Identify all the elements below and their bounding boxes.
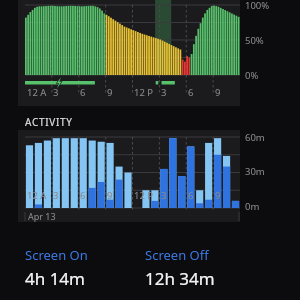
staticText: 12 P — [134, 86, 154, 99]
staticText: 0% — [245, 69, 259, 82]
staticText: 9 — [215, 86, 221, 99]
staticText: 9 — [107, 189, 113, 202]
staticText: 9 — [107, 86, 113, 99]
staticText: 0m — [245, 200, 260, 213]
staticText: 100% — [245, 0, 270, 12]
staticText: 3 — [161, 189, 167, 202]
staticText: 12 A — [27, 86, 47, 99]
staticText: 6 — [188, 86, 194, 99]
staticText: 3 — [53, 86, 59, 99]
button[interactable]: Screen On — [25, 246, 145, 290]
staticText: 9 — [215, 189, 221, 202]
staticText: Screen On — [25, 246, 88, 264]
staticText: Screen Off — [145, 246, 209, 264]
staticText: Apr 13 — [28, 210, 56, 222]
staticText: 6 — [80, 86, 86, 99]
staticText: 3 — [53, 189, 59, 202]
staticText: 6 — [80, 189, 86, 202]
staticText: 60m — [245, 131, 265, 144]
staticText: 12 P — [134, 189, 154, 202]
staticText: 12h 34m — [145, 267, 215, 290]
staticText: 12 A — [27, 189, 47, 202]
staticText: 3 — [161, 86, 167, 99]
staticText: 50% — [245, 34, 264, 47]
button[interactable]: Screen Off — [145, 246, 275, 290]
staticText: 4h 14m — [25, 267, 85, 290]
staticText: 6 — [188, 189, 194, 202]
staticText: 30m — [245, 165, 265, 178]
staticText: ACTIVITY — [25, 115, 73, 129]
